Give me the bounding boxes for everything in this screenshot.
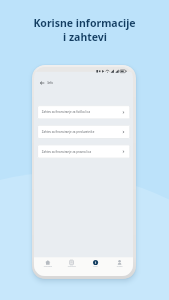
staticText: Zahtev za finansiranje za preduzetnike (42, 130, 94, 134)
staticText: Korisne informacije (33, 16, 136, 30)
staticText: i zahtevi (63, 30, 107, 44)
staticText: Početna (44, 265, 52, 268)
button[interactable]: Profil (107, 257, 131, 276)
button[interactable]: Ponuda (60, 257, 83, 276)
button[interactable]: Zahtev za finansiranje za preduzetnike (37, 125, 130, 139)
staticText: Ponuda (68, 265, 76, 268)
button[interactable]: Zahtev za finansiranje za fizička lica (37, 105, 130, 119)
button[interactable]: Zahtev za finansiranje za pravna lica (37, 145, 130, 158)
button[interactable]: Back (39, 80, 46, 86)
staticText: Zahtev za finansiranje za pravna lica (42, 150, 91, 153)
button[interactable]: Početna (36, 257, 60, 276)
staticText: Profil (117, 265, 122, 268)
staticText: Info (93, 265, 98, 268)
button[interactable]: Info (83, 257, 107, 276)
staticText: Info (47, 81, 53, 85)
staticText: Zahtev za finansiranje za fizička lica (42, 110, 90, 114)
